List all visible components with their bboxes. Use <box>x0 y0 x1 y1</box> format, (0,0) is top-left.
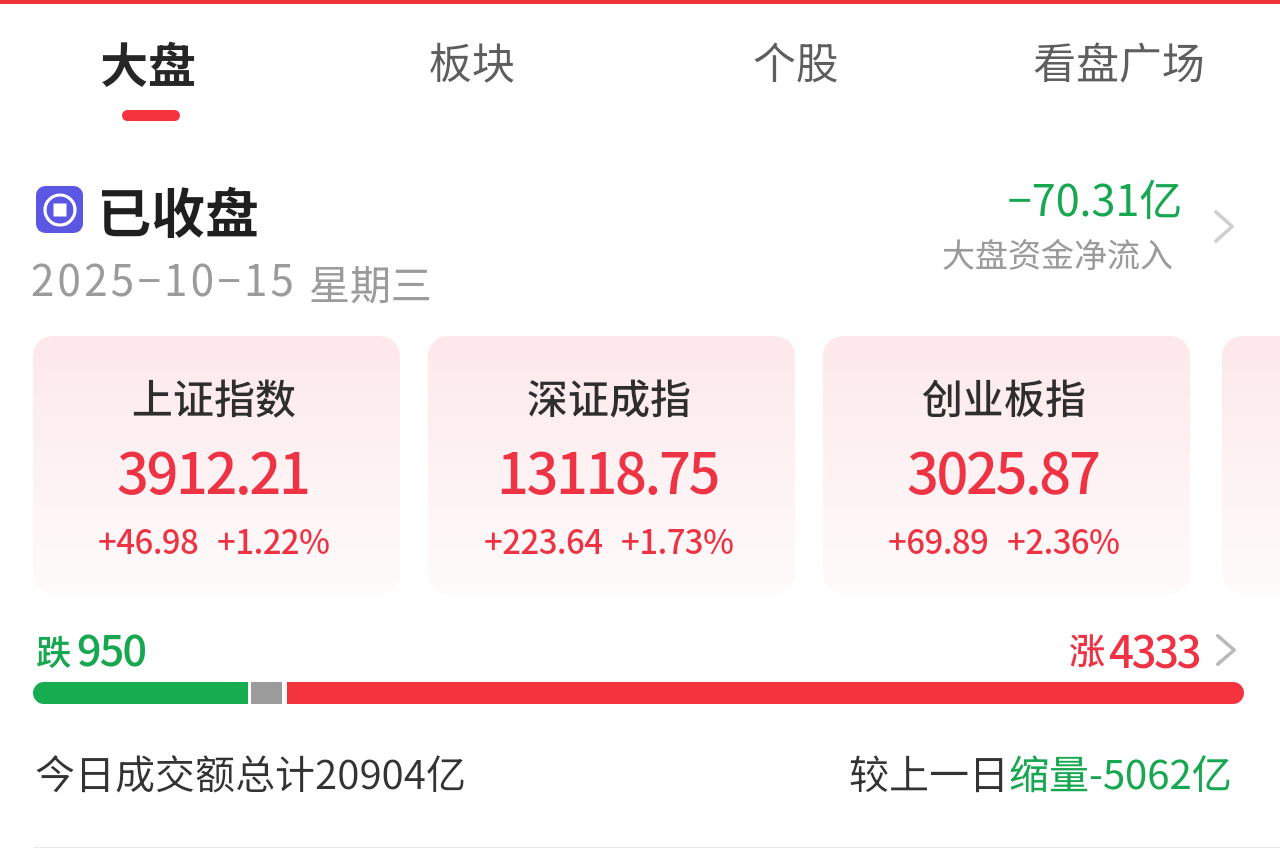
staticText: 深证成指 <box>527 366 691 425</box>
staticText: 创业板指 <box>922 366 1086 425</box>
button[interactable]: 创业板指 <box>823 336 1190 594</box>
staticText: +1.73% <box>621 516 734 564</box>
staticText: 个股 <box>753 29 839 91</box>
staticText: +69.89 <box>888 516 989 564</box>
staticText: 13118.75 <box>497 429 718 510</box>
staticText: 大盘资金净流入 <box>942 229 1173 277</box>
button[interactable] <box>74 14 222 124</box>
button[interactable] <box>403 14 541 124</box>
staticText: 4333 <box>1109 617 1199 681</box>
staticText: 大盘 <box>100 27 197 97</box>
staticText: 较上一日缩量-5062亿 <box>849 743 1232 801</box>
staticText: 已收盘 <box>97 170 259 248</box>
button[interactable]: 已收盘 <box>30 174 265 242</box>
staticText: +46.98 <box>98 516 199 564</box>
staticText: 3912.21 <box>117 429 309 510</box>
button[interactable]: 深证成指 <box>428 336 795 594</box>
staticText: +223.64 <box>484 516 603 564</box>
staticText: 3025.87 <box>907 429 1099 510</box>
button[interactable] <box>1007 14 1231 124</box>
staticText: 涨 <box>1069 622 1106 674</box>
button[interactable]: 大盘资金净流入 <box>930 168 1250 278</box>
staticText: 板块 <box>429 29 515 91</box>
staticText: 跌 <box>36 624 72 675</box>
staticText: +2.36% <box>1007 516 1120 564</box>
staticText: 950 <box>77 616 146 678</box>
staticText: 上证指数 <box>132 366 296 425</box>
staticText: 星期三 <box>309 252 432 311</box>
staticText: 看盘广场 <box>1033 29 1205 91</box>
staticText: −70.31亿 <box>1008 166 1183 228</box>
button[interactable]: 上证指数 <box>33 336 400 594</box>
button[interactable]: 下跌家数 <box>28 615 208 685</box>
button[interactable] <box>727 14 865 124</box>
staticText: 今日成交额总计20904亿 <box>35 743 466 801</box>
staticText: 2025−10−15 <box>31 247 298 308</box>
staticText: +1.22% <box>217 516 330 564</box>
button[interactable]: 上涨家数 <box>1060 615 1255 685</box>
